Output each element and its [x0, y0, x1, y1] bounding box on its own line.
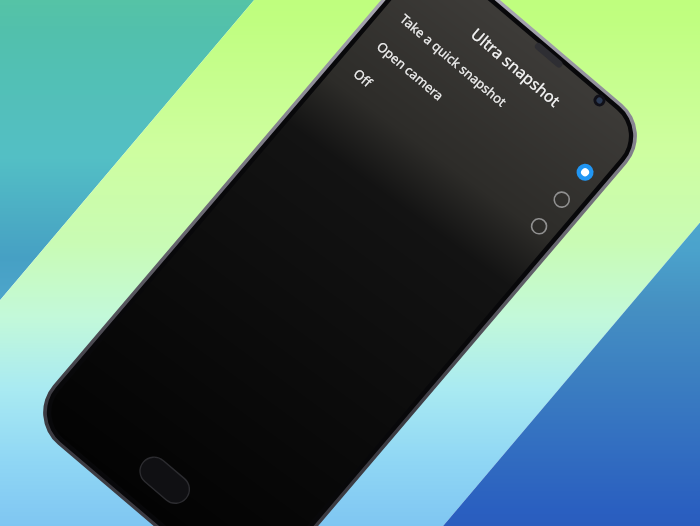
staticText: Ultra snapshot [467, 23, 565, 112]
staticText: Take a quick snapshot [396, 10, 597, 184]
staticText: Off [350, 65, 550, 239]
button[interactable]: Open camera [347, 13, 593, 230]
button[interactable]: Off [323, 40, 570, 258]
staticText: Open camera [373, 37, 574, 212]
button[interactable]: Take a quick snapshot [370, 0, 617, 203]
